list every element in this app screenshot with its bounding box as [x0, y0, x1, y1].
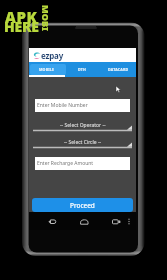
staticText: DTH: [78, 67, 86, 72]
staticText: APK: [5, 7, 38, 27]
button[interactable]: MOBILE: [29, 62, 64, 77]
button[interactable]: Proceed: [32, 198, 133, 212]
button[interactable]: Enter Recharge Amount: [35, 157, 130, 170]
staticText: MOBILE: [39, 67, 55, 72]
button[interactable]: -- Select Circle --: [33, 134, 132, 150]
staticText: Proceed: [70, 201, 95, 210]
staticText: DATACARD: [108, 67, 129, 72]
staticText: HERE: [4, 17, 39, 36]
button[interactable]: DTH: [64, 62, 100, 77]
staticText: -- Select Operator --: [60, 122, 106, 129]
staticText: -- Select Circle --: [64, 139, 102, 146]
staticText: Enter Recharge Amount: [37, 160, 94, 167]
button[interactable]: More options: [123, 212, 135, 230]
button[interactable]: Enter Mobile Number: [35, 99, 130, 112]
button[interactable]: Back: [39, 212, 65, 230]
button[interactable]: -- Select Operator --: [33, 117, 132, 133]
staticText: Enter Mobile Number: [37, 102, 88, 109]
staticText: ezpay: [41, 50, 64, 61]
button[interactable]: Home: [71, 212, 97, 230]
button[interactable]: DATACARD: [100, 62, 136, 77]
staticText: MOBI: [40, 5, 52, 31]
button[interactable]: Recent apps: [103, 212, 129, 230]
